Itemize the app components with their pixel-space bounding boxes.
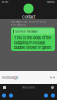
staticText: Messages are end-to-end encrypted. [11, 20, 46, 26]
staticText: Quoted message [15, 30, 38, 33]
button[interactable]: Contact info [0, 4, 57, 19]
staticText: Contact [22, 15, 35, 19]
staticText: 9:41 [2, 0, 8, 4]
staticText: 100% [47, 0, 55, 4]
staticText: Message [2, 75, 18, 80]
staticText: This is the body of the outgoing message… [14, 35, 52, 50]
staticText: Recents [22, 86, 34, 89]
